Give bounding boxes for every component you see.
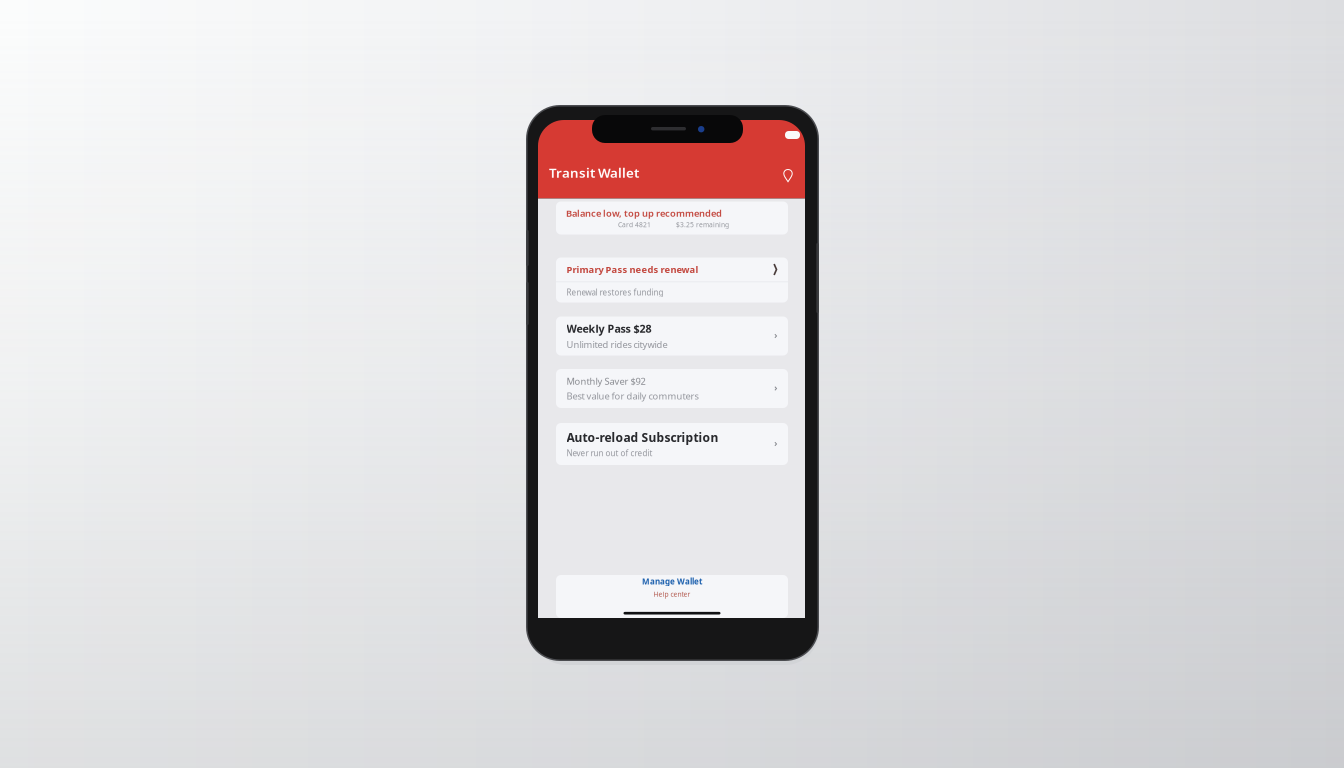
staticText: Never run out of credit: [566, 448, 652, 458]
button[interactable]: Nearby stations: [783, 162, 793, 182]
button[interactable]: Help center: [647, 590, 696, 598]
button[interactable]: Auto-reload Subscription: [556, 423, 788, 465]
staticText: Balance low, top up recommended: [566, 207, 722, 219]
staticText: Weekly Pass $28: [566, 321, 651, 336]
staticText: Renewal restores funding: [566, 287, 663, 298]
button[interactable]: Balance low, top up recommended: [556, 201, 788, 234]
button[interactable]: Primary Pass needs renewal: [556, 257, 788, 281]
button[interactable]: Weekly Pass $28: [556, 316, 788, 355]
button[interactable]: Monthly Saver $92: [556, 369, 788, 408]
staticText: Best value for daily commuters: [566, 390, 698, 402]
staticText: Unlimited rides citywide: [566, 338, 667, 350]
button[interactable]: Manage Wallet: [636, 576, 708, 587]
staticText: Manage Wallet: [642, 576, 702, 587]
staticText: Primary Pass needs renewal: [566, 263, 698, 276]
staticText: Auto-reload Subscription: [566, 429, 718, 445]
button[interactable]: Renewal restores funding: [556, 282, 788, 302]
staticText: Help center: [653, 590, 690, 598]
staticText: Card 4821: [618, 220, 651, 229]
staticText: $3.25 remaining: [676, 220, 729, 229]
staticText: Monthly Saver $92: [566, 375, 645, 387]
staticText: Transit Wallet: [549, 164, 639, 181]
